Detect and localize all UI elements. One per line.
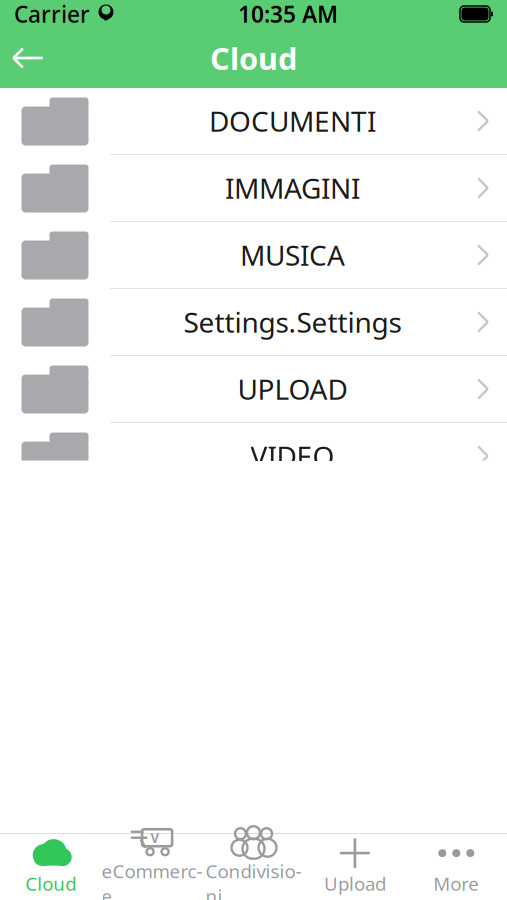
button[interactable]: V <box>101 833 203 900</box>
button[interactable]: Cloud <box>0 833 101 900</box>
button[interactable]: IMMAGINI <box>0 155 507 222</box>
staticText: DOCUMENTI <box>209 102 376 140</box>
button[interactable]: DOCUMENTI <box>0 88 507 155</box>
staticText: V <box>151 829 160 847</box>
staticText: VIDEO <box>250 437 334 475</box>
staticText: Upload <box>324 871 386 896</box>
button[interactable]: VIDEO <box>0 423 507 490</box>
staticText: Settings.Settings <box>183 303 401 341</box>
button[interactable]: Settings.Settings <box>0 289 507 356</box>
staticText: More <box>433 871 479 896</box>
staticText: Carrier <box>14 0 90 29</box>
button[interactable]: More <box>406 833 507 900</box>
button[interactable]: MUSICA <box>0 222 507 289</box>
button[interactable]: UPLOAD <box>0 356 507 423</box>
staticText: Condivisioni <box>205 859 301 900</box>
button[interactable]: Back <box>0 35 56 81</box>
staticText: UPLOAD <box>237 370 347 408</box>
staticText: MUSICA <box>240 236 345 274</box>
staticText: eCommerce <box>102 859 203 900</box>
staticText: Cloud <box>25 871 76 896</box>
button[interactable]: Upload <box>304 833 406 900</box>
staticText: Cloud <box>210 38 297 78</box>
staticText: IMMAGINI <box>225 169 360 207</box>
staticText: 10:35 AM <box>238 0 338 29</box>
button[interactable]: Condivisioni <box>203 833 304 900</box>
